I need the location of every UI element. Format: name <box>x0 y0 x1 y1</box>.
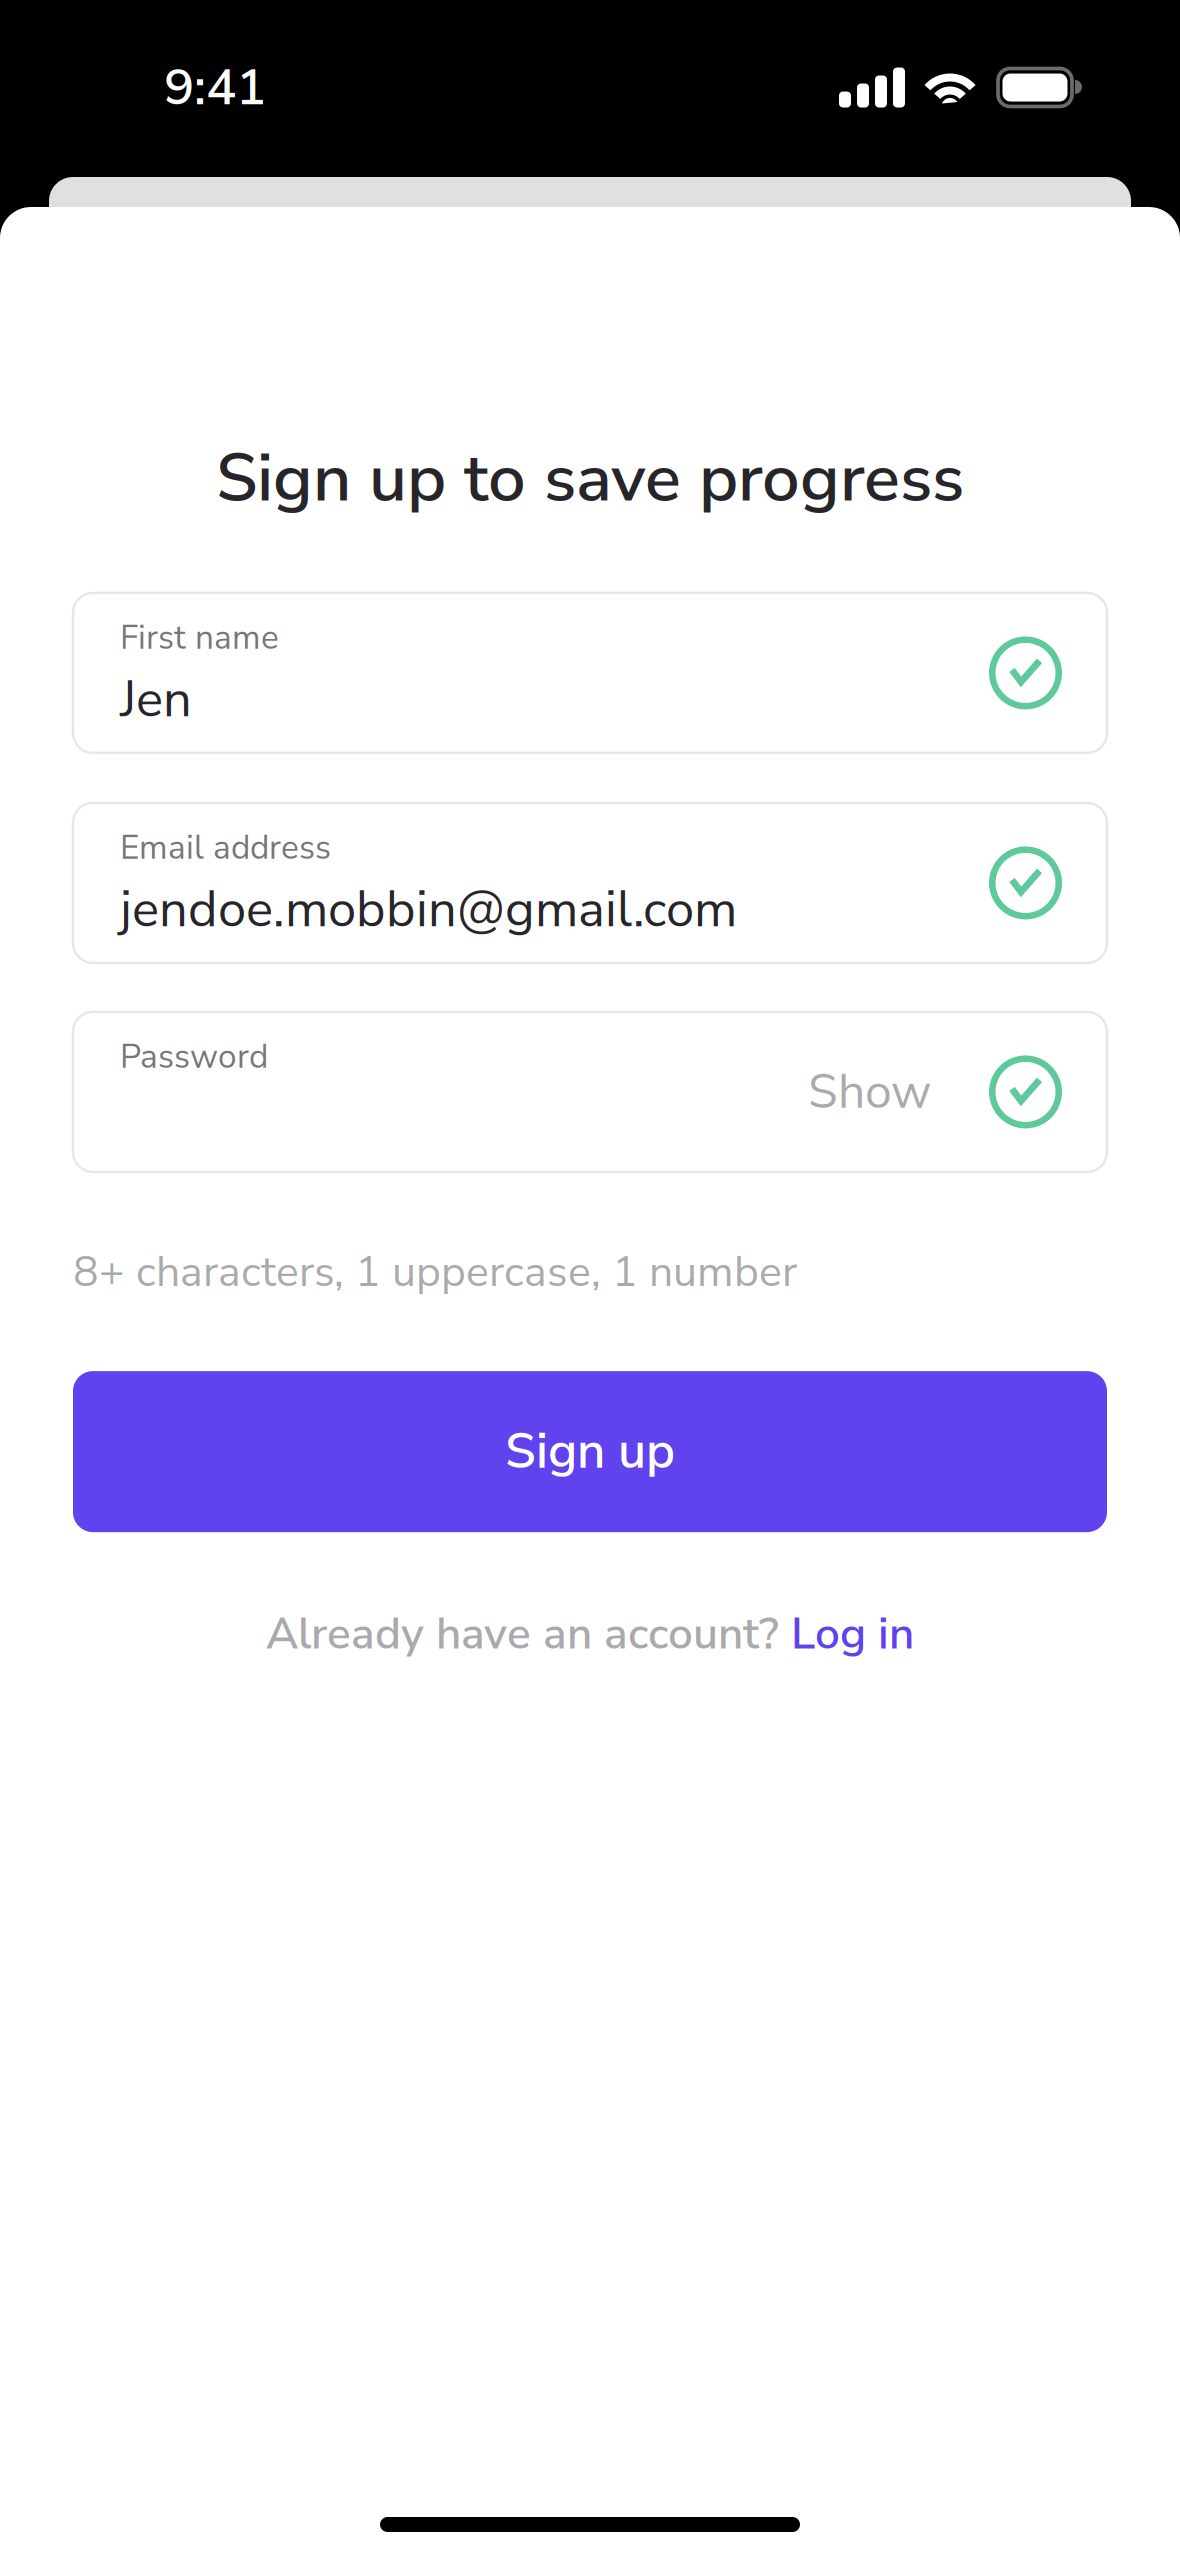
staticText: 8+ characters, 1 uppercase, 1 number <box>73 1243 797 1301</box>
staticText: jendoe.mobbin@gmail.com <box>120 875 737 944</box>
staticText: 9:41 <box>164 53 266 122</box>
staticText: Show <box>808 1059 931 1125</box>
button[interactable]: Password <box>73 1012 1107 1172</box>
button[interactable]: Email address <box>73 803 1107 963</box>
button[interactable]: Sign up <box>73 1371 1107 1532</box>
staticText: Email address <box>120 825 331 870</box>
staticText: First name <box>120 615 279 660</box>
staticText: Jen <box>120 665 192 734</box>
staticText: Already have an account? <box>266 1604 791 1664</box>
staticText: Sign up <box>505 1418 675 1485</box>
button[interactable]: First name <box>73 593 1107 753</box>
staticText: Password <box>120 1034 268 1079</box>
staticText: Sign up to save progress <box>216 433 964 524</box>
staticText: Log in <box>791 1604 914 1664</box>
button[interactable]: Already have an account? <box>73 1604 1107 1664</box>
